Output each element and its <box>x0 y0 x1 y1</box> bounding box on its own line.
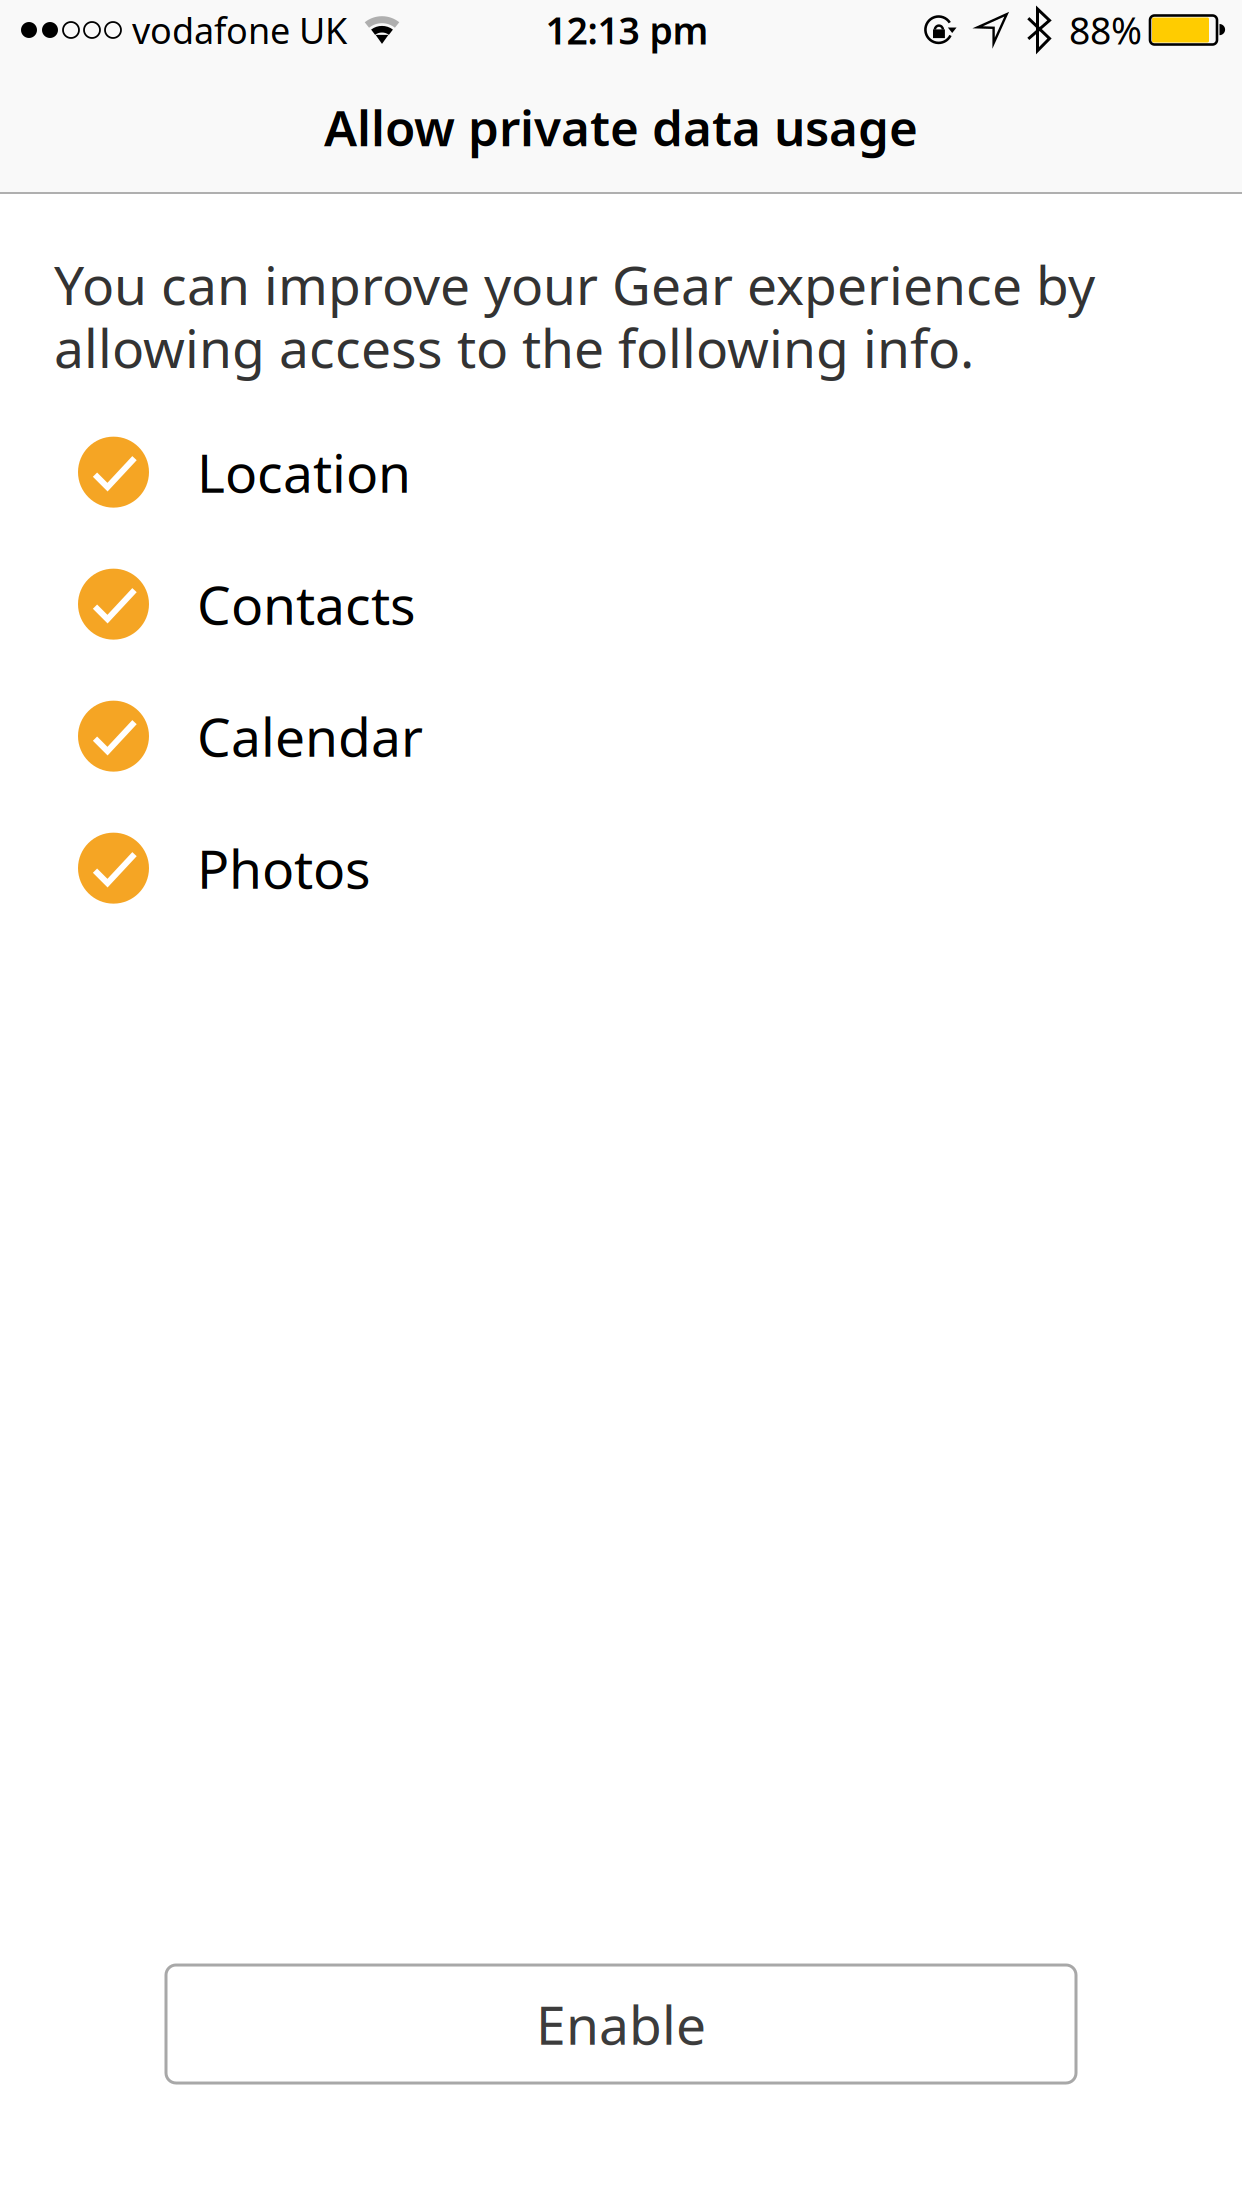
staticText: Enable <box>536 1989 706 2059</box>
button[interactable]: Location <box>78 437 1242 508</box>
staticText: Calendar <box>197 701 423 771</box>
button[interactable]: Calendar <box>78 701 1242 772</box>
button[interactable]: Enable <box>166 1965 1076 2083</box>
staticText: Allow private data usage <box>324 94 918 160</box>
staticText: Photos <box>197 833 371 903</box>
staticText: 12:13 pm <box>545 5 708 55</box>
staticText: You can improve your Gear experience by … <box>54 249 1095 383</box>
staticText: vodafone UK <box>132 6 347 54</box>
staticText: Location <box>197 437 411 507</box>
button[interactable]: Photos <box>78 833 1242 904</box>
button[interactable]: Contacts <box>78 569 1242 640</box>
staticText: Contacts <box>197 569 416 639</box>
staticText: 88% <box>1069 5 1142 55</box>
